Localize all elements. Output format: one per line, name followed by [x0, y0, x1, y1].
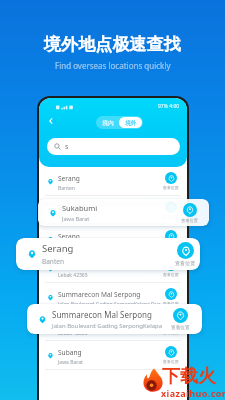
staticText: Banten — [58, 185, 75, 192]
staticText: Banten — [42, 257, 64, 266]
staticText: 境外地点极速查找 — [44, 34, 181, 55]
button[interactable]: Sukabumi — [39, 196, 187, 224]
staticText: Jawa Barat — [62, 215, 90, 222]
staticText: 查看位置 — [163, 330, 179, 335]
staticText: Sukabumi — [62, 203, 98, 213]
staticText: Lebak 42365 — [58, 330, 88, 337]
staticText: 查看位置 — [163, 359, 179, 364]
staticText: Cimarga — [58, 319, 85, 328]
staticText: Sukabumi — [58, 203, 89, 212]
button[interactable]: Subang — [39, 341, 187, 369]
staticText: xiazaihuo.com — [161, 387, 225, 399]
button[interactable]: 查看位置 — [163, 172, 179, 190]
button[interactable]: 查看位置 — [163, 259, 179, 277]
staticText: Jalan Boulevard Gading SerpongKelapa Dua — [52, 322, 168, 330]
staticText: Find overseas locations quickly — [55, 60, 171, 71]
button[interactable]: 查看位置 — [181, 203, 199, 223]
staticText: Subang — [58, 348, 82, 357]
staticText: Lebak 42365 — [58, 272, 88, 279]
staticText: Jawa Barat — [58, 214, 83, 221]
button[interactable]: 查看位置 — [163, 201, 179, 219]
staticText: Serang — [58, 174, 80, 183]
staticText: 97% 4:00 — [158, 103, 180, 110]
button[interactable]: 境内 — [97, 117, 119, 128]
staticText: Cimarga — [58, 261, 85, 270]
button[interactable]: Back — [44, 114, 58, 128]
button[interactable]: Cimarga — [39, 312, 187, 340]
button[interactable]: 查看位置 — [163, 288, 179, 306]
staticText: 查看位置 — [163, 243, 179, 248]
staticText: 查看位置 — [163, 185, 179, 190]
button[interactable]: Summarecon Mal Serpong — [39, 283, 187, 311]
staticText: 查看位置 — [163, 272, 179, 277]
button[interactable]: Serang — [39, 225, 187, 253]
staticText: s — [65, 142, 69, 152]
staticText: 境外 — [125, 119, 137, 126]
button[interactable]: s — [47, 138, 180, 155]
staticText: 下载火 — [162, 365, 216, 388]
button[interactable]: 查看位置 — [171, 308, 190, 330]
staticText: 查看位置 — [181, 218, 199, 223]
staticText: Banten — [58, 243, 75, 250]
button[interactable]: Sukabumi — [38, 199, 209, 226]
button[interactable]: Serang — [39, 167, 187, 195]
button[interactable]: 查看位置 — [163, 346, 179, 364]
staticText: Serang — [58, 232, 80, 241]
button[interactable]: 查看位置 — [163, 317, 179, 335]
button[interactable]: Serang — [16, 238, 200, 270]
button[interactable]: 查看位置 — [175, 242, 196, 266]
button[interactable]: 查看位置 — [163, 230, 179, 248]
button[interactable]: Cimarga — [39, 254, 187, 282]
staticText: Summarecon Mal Serpong — [52, 309, 152, 320]
button[interactable]: 境外 — [119, 117, 142, 128]
staticText: 查看位置 — [163, 301, 179, 306]
button[interactable]: Summarecon Mal Serpong — [27, 304, 202, 334]
staticText: 查看位置 — [175, 260, 196, 266]
staticText: Jawa Barat — [58, 359, 83, 366]
staticText: Serang — [42, 242, 74, 255]
staticText: 查看位置 — [171, 324, 190, 330]
staticText: Jalan Boulevard Gading SerpongKelapa Dua — [58, 301, 161, 308]
staticText: Summarecon Mal Serpong — [58, 290, 141, 299]
staticText: 境内 — [102, 119, 114, 126]
